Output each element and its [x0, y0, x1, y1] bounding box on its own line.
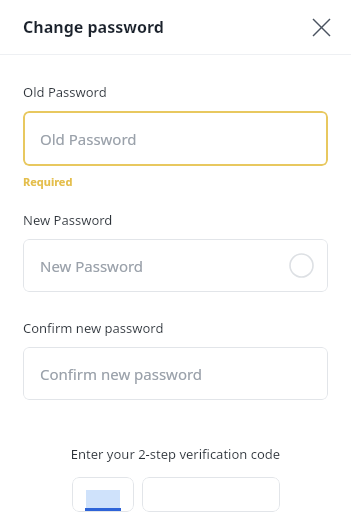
button[interactable]: New Password [23, 239, 328, 292]
button[interactable]: Verification code field [142, 477, 280, 512]
staticText: New Password [23, 211, 113, 229]
staticText: Required [23, 174, 73, 189]
button[interactable]: Verification code digit [72, 477, 134, 512]
staticText: Old Password [23, 83, 107, 101]
staticText: Enter your 2-step verification code [0, 445, 351, 463]
button[interactable]: Close [301, 7, 341, 47]
button[interactable]: Confirm new password [23, 347, 328, 400]
staticText: Confirm new password [40, 364, 203, 384]
staticText: Confirm new password [23, 319, 164, 337]
staticText: Change password [23, 16, 164, 38]
staticText: Old Password [40, 129, 137, 149]
staticText: New Password [40, 256, 144, 276]
button[interactable]: Old Password [23, 111, 328, 166]
